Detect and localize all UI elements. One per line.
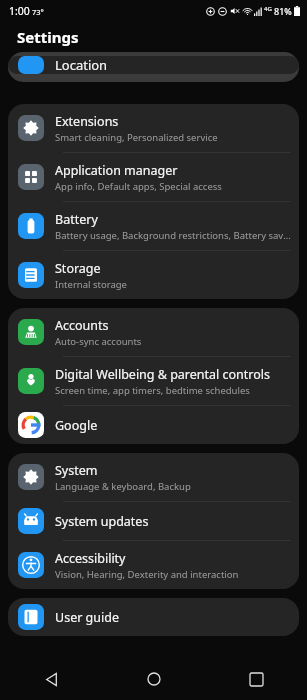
staticText: Storage <box>55 260 101 277</box>
staticText: Auto-sync accounts <box>55 335 142 348</box>
staticText: System <box>55 462 98 479</box>
staticText: Battery usage, Background restrictions, … <box>55 229 291 242</box>
staticText: Accounts <box>55 317 109 334</box>
staticText: Digital Wellbeing & parental controls <box>55 366 271 383</box>
button[interactable]: Battery <box>8 202 299 250</box>
staticText: Settings <box>17 27 79 47</box>
staticText: Search settings <box>23 59 106 75</box>
button[interactable]: System updates <box>8 502 299 540</box>
button[interactable]: Recents <box>205 658 307 700</box>
button[interactable]: Home <box>103 658 205 700</box>
staticText: Language & keyboard, Backup <box>55 480 191 493</box>
staticText: 1:00 <box>9 4 30 18</box>
button[interactable]: Location <box>8 56 299 74</box>
button[interactable]: Extensions <box>8 104 299 152</box>
button[interactable]: Storage <box>8 251 299 299</box>
staticText: 4G <box>264 5 272 13</box>
staticText: System updates <box>55 513 149 530</box>
staticText: Smart cleaning, Personalized service <box>55 131 218 144</box>
button[interactable]: Back <box>0 658 103 700</box>
staticText: Battery <box>55 211 98 228</box>
staticText: Google <box>55 417 98 434</box>
button[interactable]: User guide <box>8 598 299 636</box>
button[interactable]: Accessibility <box>8 541 299 589</box>
button[interactable]: Google <box>8 406 299 444</box>
staticText: 73° <box>32 7 44 17</box>
button[interactable]: System <box>8 453 299 501</box>
staticText: Location <box>55 56 108 74</box>
button[interactable]: Application manager <box>8 153 299 201</box>
staticText: Extensions <box>55 113 119 130</box>
button[interactable]: Accounts <box>8 308 299 356</box>
staticText: 81% <box>274 5 292 17</box>
button[interactable]: Digital Wellbeing & parental controls <box>8 357 299 405</box>
button[interactable]: Search settings <box>8 52 299 82</box>
staticText: Vision, Hearing, Dexterity and interacti… <box>55 568 239 581</box>
staticText: App info, Default apps, Special access <box>55 180 222 193</box>
staticText: Application manager <box>55 162 178 179</box>
staticText: User guide <box>55 609 119 626</box>
staticText: Internal storage <box>55 278 127 291</box>
staticText: Accessibility <box>55 550 126 567</box>
staticText: Screen time, app timers, bedtime schedul… <box>55 384 250 397</box>
